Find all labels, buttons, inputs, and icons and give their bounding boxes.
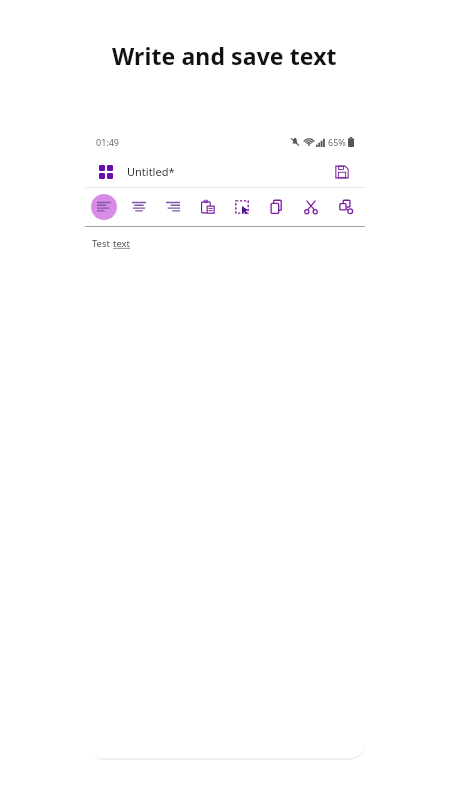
button[interactable]: Align center — [126, 194, 152, 220]
button[interactable]: Save — [329, 159, 355, 185]
button[interactable]: Copy — [264, 194, 290, 220]
button[interactable]: Cut — [298, 194, 324, 220]
button[interactable]: Share — [333, 194, 359, 220]
button[interactable]: Align left — [91, 194, 117, 220]
button[interactable]: Paste — [195, 194, 221, 220]
button[interactable]: Select all — [229, 194, 255, 220]
button[interactable]: Test — [85, 227, 365, 758]
staticText: text — [113, 237, 131, 250]
staticText: Write and save text — [112, 40, 337, 71]
staticText: Untitled* — [127, 164, 175, 179]
button[interactable]: Menu — [93, 159, 119, 185]
staticText: Test — [92, 237, 113, 250]
staticText: 01:49 — [96, 136, 120, 148]
button[interactable]: Align right — [160, 194, 186, 220]
staticText: 65% — [328, 136, 346, 148]
